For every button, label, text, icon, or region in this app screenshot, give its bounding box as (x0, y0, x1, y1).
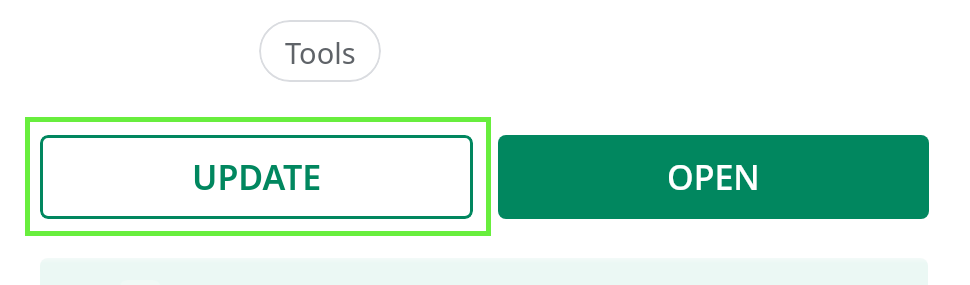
staticText: OPEN (667, 154, 760, 200)
staticText: Tools (285, 33, 356, 72)
button[interactable]: OPEN (498, 135, 929, 219)
button[interactable]: UPDATE (40, 135, 473, 219)
button[interactable]: Tools (259, 20, 381, 82)
staticText: UPDATE (192, 154, 322, 200)
